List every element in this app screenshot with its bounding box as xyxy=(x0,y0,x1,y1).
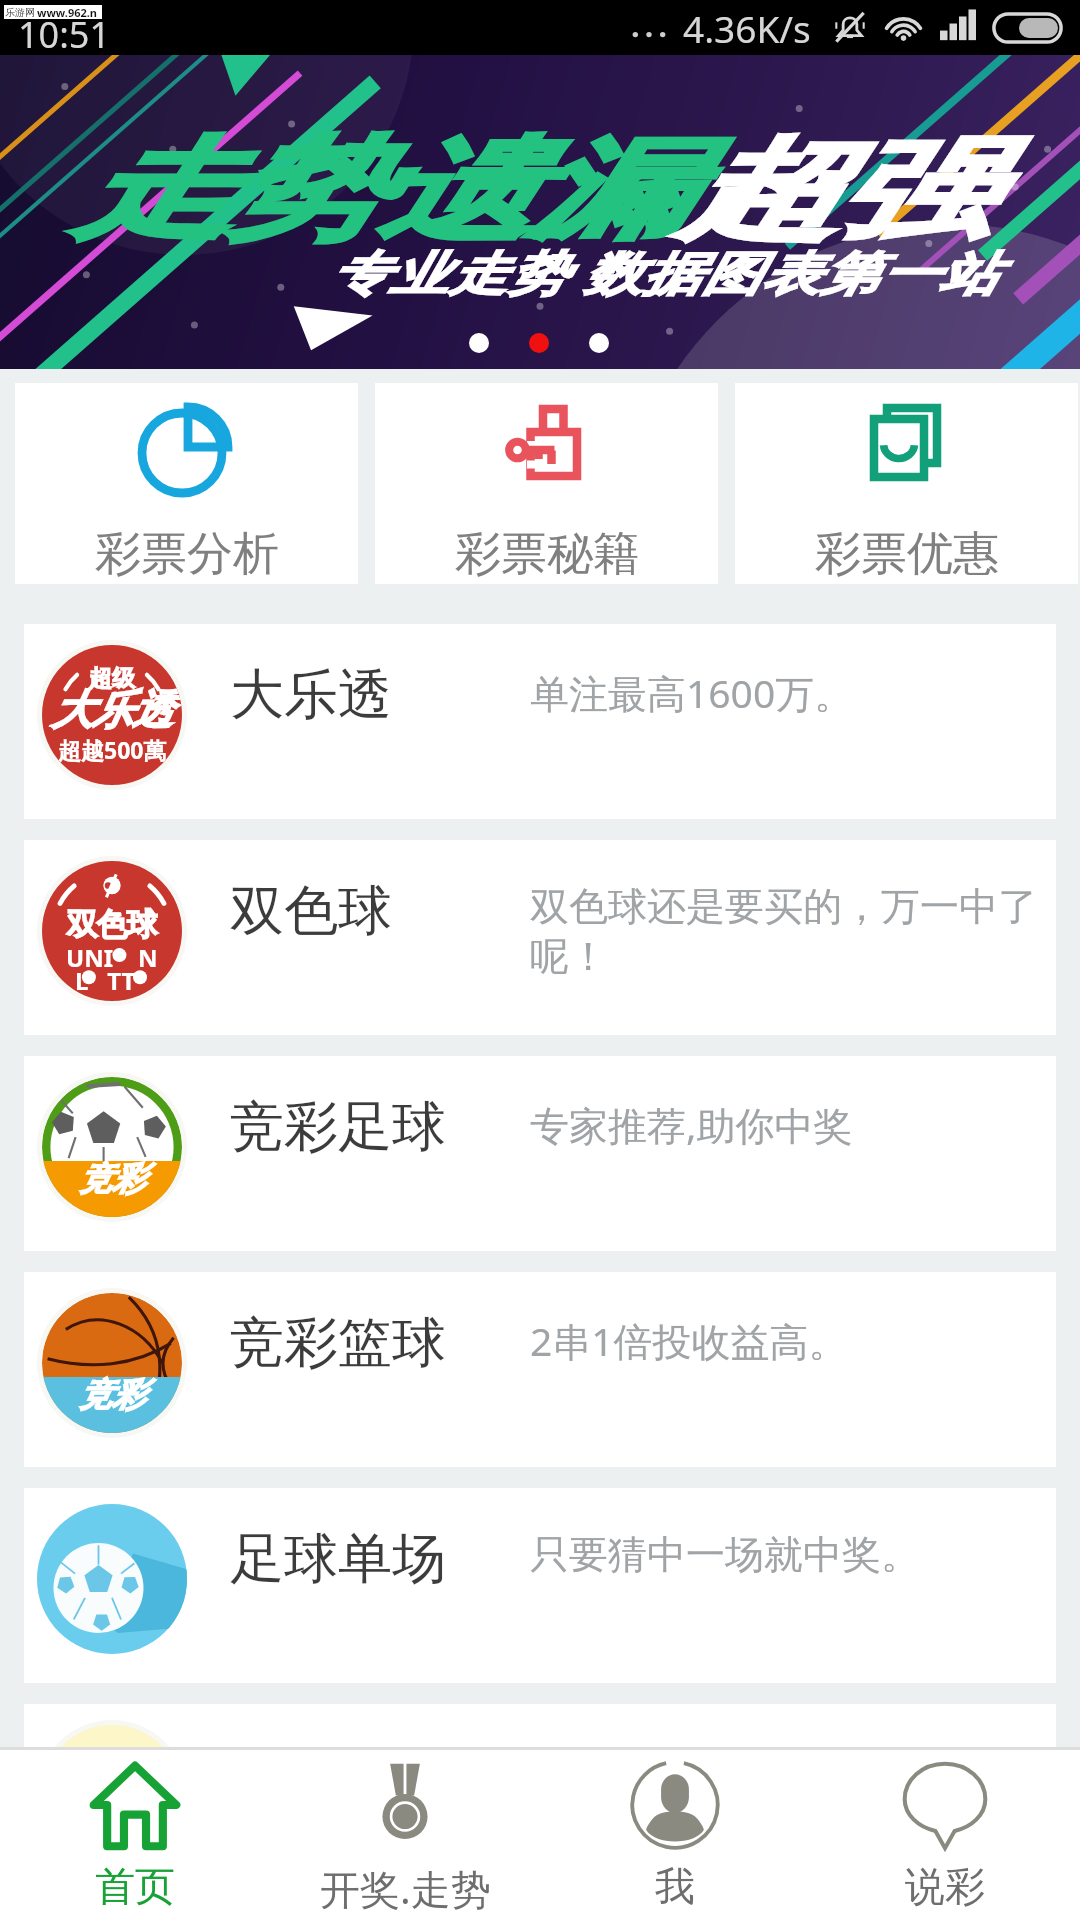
staticText: UNI N xyxy=(66,941,158,974)
staticText: 足球单场 xyxy=(230,1525,446,1593)
staticText: 双色球 xyxy=(230,877,392,945)
staticText: 超越500萬 xyxy=(58,734,167,765)
staticText: 竞彩足球 xyxy=(230,1093,446,1161)
staticText: 竞彩篮球 xyxy=(230,1309,446,1377)
button[interactable]: 彩票优惠 xyxy=(735,383,1078,584)
staticText: 大乐透 xyxy=(230,661,392,729)
staticText: 双色球还是要买的，万一中了呢！ xyxy=(530,882,1060,982)
staticText: 只要猜中一场就中奖。 xyxy=(530,1530,1060,1579)
staticText: 彩票优惠 xyxy=(815,525,999,583)
staticText: 首页 xyxy=(95,1861,175,1911)
staticText: 超强 xyxy=(684,123,987,260)
staticText: 双色球 xyxy=(67,905,157,944)
staticText: 专家推荐,助你中奖 xyxy=(530,1098,1060,1151)
staticText: 彩票秘籍 xyxy=(455,525,639,583)
button[interactable]: 开奖.走势 xyxy=(270,1750,540,1920)
button[interactable]: 彩票秘籍 xyxy=(375,383,718,584)
staticText: 4.36K/s xyxy=(683,3,811,53)
staticText: 专业走势 数据图表第一站 xyxy=(330,240,999,303)
button[interactable] xyxy=(24,1704,1056,1747)
button[interactable]: 说彩 xyxy=(810,1750,1080,1920)
button[interactable]: 竞彩 xyxy=(24,1272,1056,1467)
staticText: 开奖.走势 xyxy=(320,1861,491,1916)
button[interactable]: 走势遗漏 xyxy=(0,55,1080,369)
staticText: 彩票分析 xyxy=(95,525,279,583)
button[interactable]: 首页 xyxy=(0,1750,270,1920)
staticText: 走势遗漏 xyxy=(77,123,684,260)
button[interactable]: 竞彩 xyxy=(24,1056,1056,1251)
staticText: 竞彩 xyxy=(79,1374,145,1416)
staticText: 单注最高1600万。 xyxy=(530,666,1060,719)
staticText: 10:51 xyxy=(18,10,111,59)
staticText: 我 xyxy=(655,1861,695,1911)
staticText: 说彩 xyxy=(905,1861,985,1911)
button[interactable]: 我 xyxy=(540,1750,810,1920)
button[interactable]: 超级 xyxy=(24,624,1056,819)
button[interactable]: 足球单场 xyxy=(24,1488,1056,1683)
button[interactable]: 双色球 xyxy=(24,840,1056,1035)
staticText: 2串1倍投收益高。 xyxy=(530,1314,1060,1367)
staticText: 竞彩 xyxy=(79,1158,145,1200)
staticText: L TT xyxy=(75,964,136,997)
staticText: 超级 xyxy=(89,664,135,693)
staticText: 大乐透 xyxy=(52,685,172,737)
button[interactable]: 彩票分析 xyxy=(15,383,358,584)
staticText: 乐游网 xyxy=(5,6,35,19)
staticText: www.962.net xyxy=(37,5,102,19)
